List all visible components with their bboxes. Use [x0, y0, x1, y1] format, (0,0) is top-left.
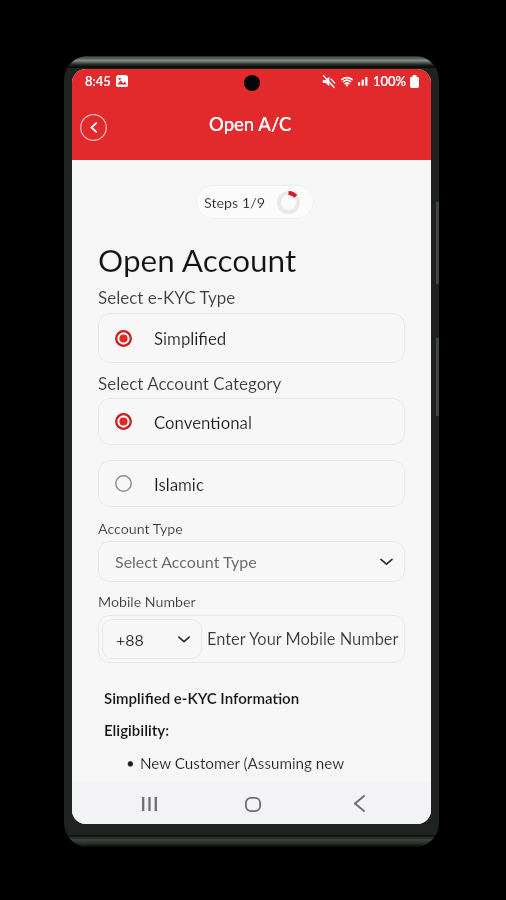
staticText: 100% — [373, 73, 407, 89]
button[interactable]: Back — [73, 107, 113, 147]
staticText: Eligibility: — [104, 721, 170, 739]
button[interactable]: Conventional — [98, 398, 405, 445]
staticText: +88 — [116, 630, 177, 649]
button[interactable]: Back — [335, 782, 383, 824]
staticText: Select Account Category — [98, 373, 282, 393]
button[interactable]: Simplified — [98, 313, 405, 363]
staticText: Mobile Number — [98, 593, 196, 610]
staticText: Select e-KYC Type — [98, 287, 236, 307]
staticText: Account Type — [98, 520, 183, 537]
staticText: Enter Your Mobile Number — [207, 629, 399, 649]
staticText: New Customer (Assuming new — [140, 754, 345, 772]
button[interactable]: Islamic — [98, 460, 405, 507]
staticText: • — [126, 754, 135, 772]
staticText: Select Account Type — [115, 552, 379, 571]
staticText: Steps 1/9 — [204, 194, 265, 211]
staticText: Open Account — [98, 241, 297, 279]
staticText: Islamic — [154, 474, 204, 494]
button[interactable]: Steps 1/9 — [196, 185, 314, 219]
staticText: Open A/C — [209, 113, 292, 135]
staticText: Conventional — [154, 412, 252, 432]
button[interactable]: +88 — [102, 619, 202, 659]
staticText: Simplified — [154, 328, 227, 348]
button[interactable]: Recent apps — [125, 782, 173, 824]
button[interactable]: Select Account Type — [98, 541, 405, 582]
staticText: Simplified e-KYC Information — [104, 689, 300, 707]
button[interactable]: Home — [229, 783, 277, 824]
staticText: 8:45 — [85, 73, 111, 89]
